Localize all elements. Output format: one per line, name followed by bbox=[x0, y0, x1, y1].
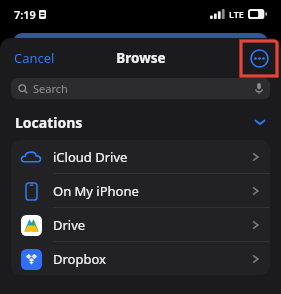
button[interactable]: iCloud Drive bbox=[11, 140, 270, 174]
staticText: Browse bbox=[116, 49, 166, 67]
button[interactable]: More options bbox=[241, 41, 277, 76]
staticText: iCloud Drive bbox=[53, 148, 128, 166]
staticText: Search bbox=[33, 81, 68, 96]
button[interactable]: Cancel bbox=[8, 45, 61, 71]
button[interactable]: Dropbox bbox=[11, 242, 270, 275]
staticText: Locations bbox=[15, 113, 83, 132]
staticText: Drive bbox=[53, 216, 86, 234]
staticText: Cancel bbox=[14, 49, 55, 67]
button[interactable]: Locations bbox=[0, 109, 281, 135]
button[interactable]: On My iPhone bbox=[11, 174, 270, 208]
staticText: Dropbox bbox=[53, 250, 106, 268]
staticText: LTE bbox=[229, 8, 244, 20]
staticText: 7:19 bbox=[14, 7, 36, 22]
button[interactable]: Drive bbox=[11, 208, 270, 242]
button[interactable]: Search bbox=[11, 78, 270, 99]
staticText: On My iPhone bbox=[53, 182, 139, 200]
